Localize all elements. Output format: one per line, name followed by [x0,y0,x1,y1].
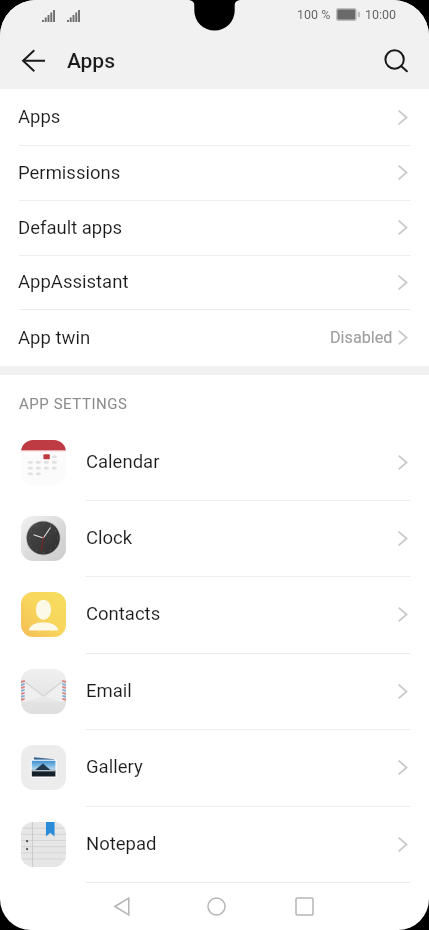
staticText: AppAssistant [18,271,129,293]
button[interactable]: AppAssistant [0,255,429,309]
button[interactable]: Back [98,882,146,930]
staticText: Clock [86,527,133,549]
button[interactable]: Calendar [0,424,429,500]
staticText: Permissions [18,162,121,184]
button[interactable]: Notepad [0,806,429,882]
button[interactable]: App twin [0,309,429,366]
staticText: Apps [67,49,115,74]
button[interactable]: Back [10,37,58,85]
button[interactable]: Home [192,882,240,930]
button[interactable]: Contacts [0,576,429,652]
button[interactable]: Default apps [0,200,429,255]
staticText: Default apps [18,217,123,239]
button[interactable]: Clock [0,500,429,576]
staticText: Gallery [86,756,143,778]
staticText: Email [86,680,132,702]
staticText: Contacts [86,603,161,625]
staticText: Calendar [86,451,160,473]
button[interactable]: Gallery [0,729,429,805]
button[interactable]: Search [371,37,419,85]
staticText: 10:00 [365,7,397,22]
button[interactable]: Recents [280,882,328,930]
staticText: Apps [18,106,61,128]
staticText: APP SETTINGS [19,395,128,413]
staticText: Disabled [330,328,393,347]
staticText: 100 % [297,7,331,22]
button[interactable]: Email [0,653,429,729]
staticText: Notepad [86,833,157,855]
button[interactable]: Apps [0,89,429,145]
staticText: App twin [18,327,91,349]
button[interactable]: Permissions [0,145,429,200]
